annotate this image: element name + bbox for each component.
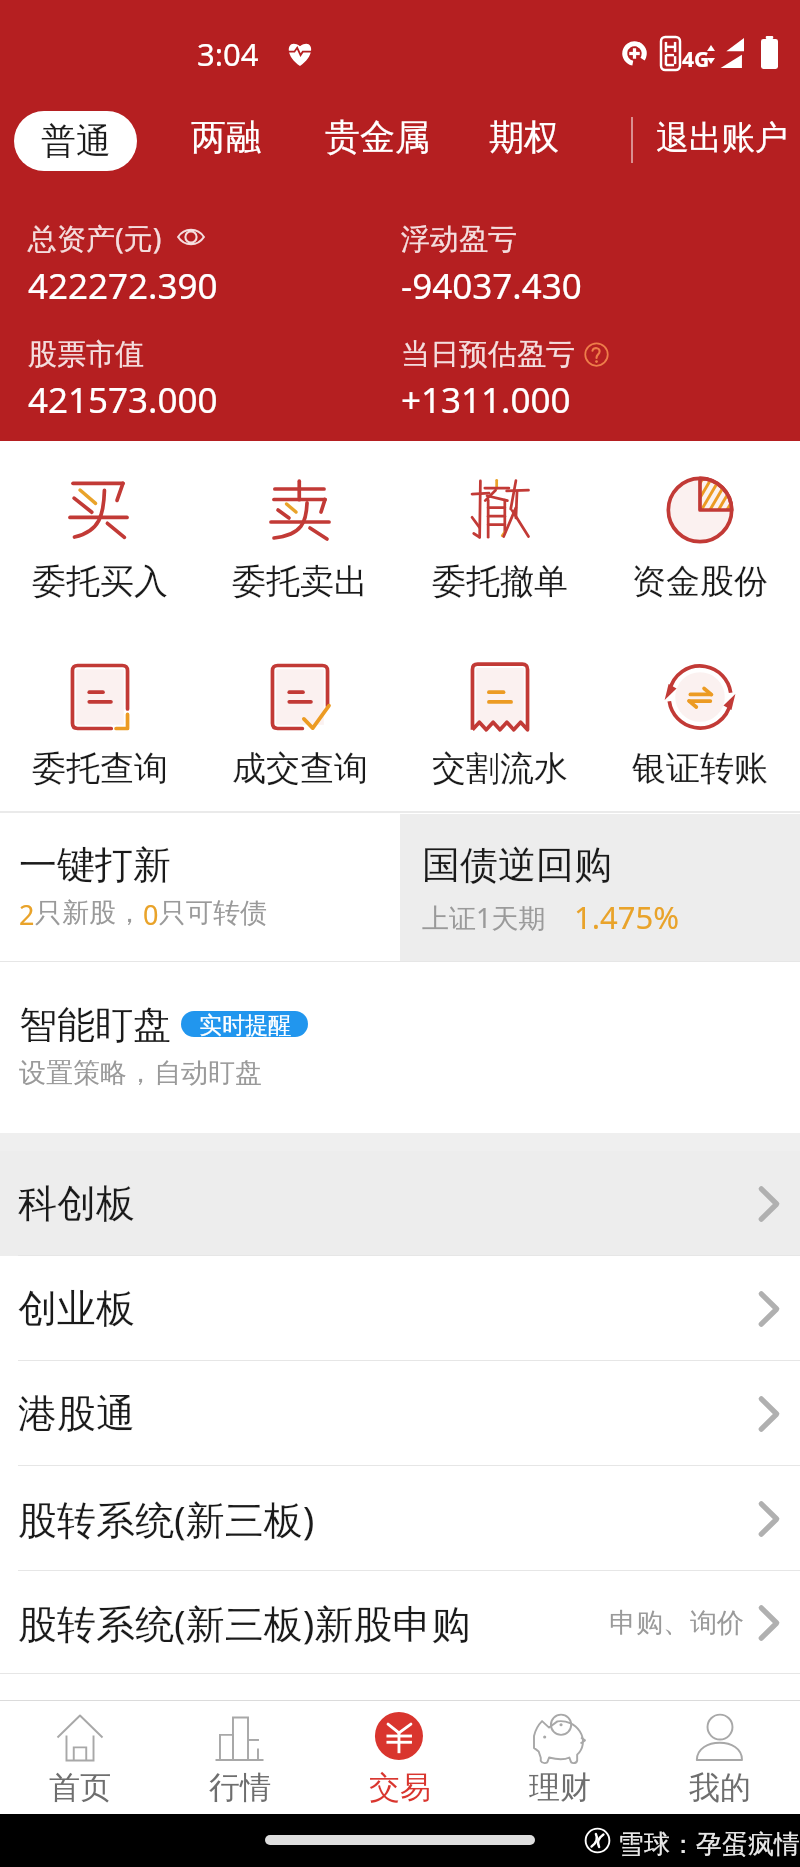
button[interactable]: 两融 (177, 107, 275, 167)
button[interactable]: 交割流水 (400, 628, 600, 812)
button[interactable]: 资金股份 (600, 441, 800, 625)
button[interactable]: 港股通 (0, 1361, 800, 1466)
staticText: 上证1天期 (422, 899, 546, 936)
button[interactable]: 行情 (160, 1701, 320, 1814)
staticText: +1311.000 (401, 376, 571, 424)
staticText: 4G (682, 45, 710, 74)
staticText: 一键打新 (19, 841, 171, 889)
button[interactable]: 创业板 (0, 1256, 800, 1361)
button[interactable]: 股转系统(新三板) (0, 1466, 800, 1571)
staticText: 创业板 (18, 1284, 135, 1333)
button[interactable]: 理财 (480, 1701, 640, 1814)
staticText: 科创板 (18, 1179, 135, 1228)
staticText: 0 (143, 896, 159, 933)
button[interactable]: 委托卖出 (200, 441, 400, 625)
staticText: 成交查询 (232, 747, 368, 790)
button[interactable]: 科创板 (0, 1151, 800, 1256)
staticText: 只可转债 (159, 896, 267, 930)
staticText: 浮动盈亏 (401, 221, 517, 258)
staticText: 两融 (191, 115, 261, 159)
staticText: 交易 (369, 1768, 431, 1807)
staticText: 只新股， (35, 896, 143, 930)
staticText: 委托撤单 (432, 560, 568, 603)
staticText: 421573.000 (28, 376, 218, 424)
button[interactable]: 国债逆回购 (400, 814, 800, 961)
staticText: 行情 (209, 1768, 271, 1807)
staticText: 港股通 (18, 1389, 135, 1438)
staticText: 贵金属 (325, 115, 430, 159)
button[interactable]: 交易 (320, 1701, 480, 1814)
button[interactable]: 一键打新 (0, 814, 400, 961)
staticText: 股票市值 (28, 336, 144, 373)
button[interactable]: 首页 (0, 1701, 160, 1814)
staticText: 股转系统(新三板) (18, 1492, 315, 1545)
button[interactable]: 委托查询 (0, 628, 200, 812)
staticText: 当日预估盈亏 (401, 336, 575, 373)
button[interactable]: 智能盯盘 (0, 962, 800, 1133)
button[interactable]: 成交查询 (200, 628, 400, 812)
button[interactable]: 普通 (14, 111, 137, 171)
staticText: 设置策略，自动盯盘 (19, 1056, 262, 1090)
staticText: 2 (19, 896, 35, 933)
staticText: 期权 (489, 115, 559, 159)
staticText: -94037.430 (401, 262, 582, 310)
button[interactable]: 委托买入 (0, 441, 200, 625)
button[interactable]: 退出账户 (642, 109, 800, 167)
staticText: 3:04 (197, 33, 259, 75)
staticText: 我的 (689, 1768, 751, 1807)
other: Help (584, 342, 609, 367)
staticText: 资金股份 (632, 560, 768, 603)
staticText: 理财 (529, 1768, 591, 1807)
staticText: 首页 (49, 1768, 111, 1807)
staticText: 1.475% (574, 896, 679, 938)
button[interactable]: 期权 (475, 107, 573, 167)
staticText: 国债逆回购 (422, 841, 612, 889)
button[interactable]: 委托撤单 (400, 441, 600, 625)
staticText: 总资产(元) (28, 218, 162, 258)
staticText: 雪球：孕蛋疯情 (618, 1828, 800, 1861)
staticText: 银证转账 (632, 747, 768, 790)
staticText: 智能盯盘 (19, 1001, 171, 1049)
staticText: 股转系统(新三板)新股申购 (18, 1596, 471, 1649)
staticText: 委托买入 (32, 560, 168, 603)
staticText: 普通 (41, 119, 111, 163)
staticText: 委托查询 (32, 747, 168, 790)
staticText: 交割流水 (432, 747, 568, 790)
staticText: 实时提醒 (199, 1011, 291, 1037)
button[interactable]: 股转系统(新三板)新股申购 (0, 1571, 800, 1674)
staticText: 退出账户 (656, 117, 788, 159)
other: Toggle balance visibility (177, 227, 205, 247)
staticText: 申购、询价 (609, 1606, 744, 1640)
button[interactable]: 实时提醒 (181, 1011, 308, 1037)
staticText: 委托卖出 (232, 560, 368, 603)
button[interactable]: 银证转账 (600, 628, 800, 812)
button[interactable]: 贵金属 (311, 107, 444, 167)
button[interactable]: 我的 (640, 1701, 800, 1814)
staticText: 422272.390 (28, 262, 218, 310)
